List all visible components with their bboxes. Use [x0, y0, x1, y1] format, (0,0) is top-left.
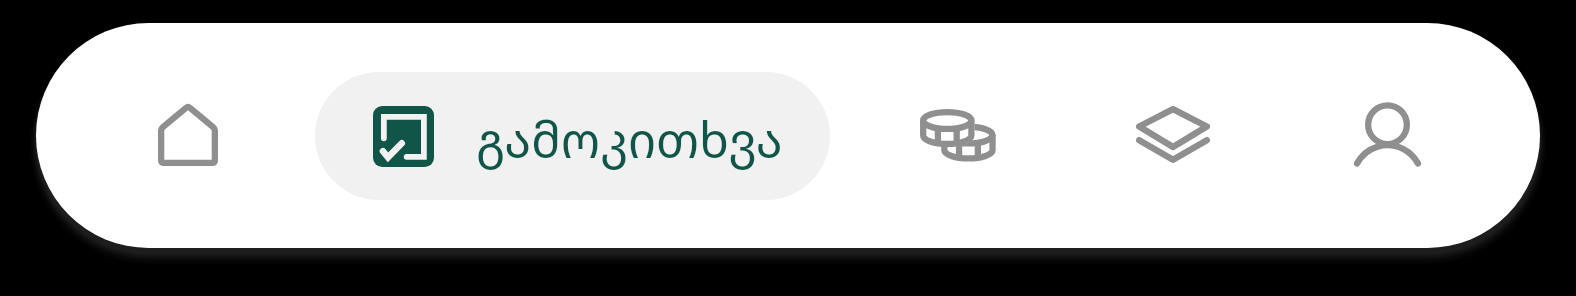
staticText: გამოკითხვა	[476, 106, 783, 173]
button[interactable]: Projects	[1111, 78, 1235, 190]
button[interactable]: გამოკითხვა	[315, 72, 830, 200]
button[interactable]: Earnings	[896, 79, 1020, 191]
button[interactable]: Profile	[1328, 78, 1446, 190]
button[interactable]: Home	[120, 56, 256, 213]
